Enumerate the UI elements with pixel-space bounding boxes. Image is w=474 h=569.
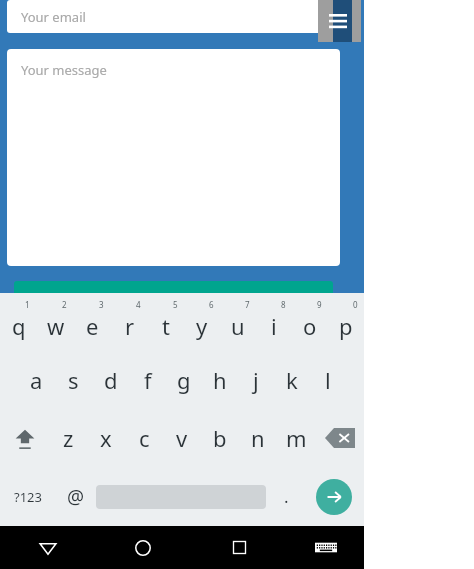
staticText: p	[339, 311, 353, 341]
button[interactable]: Recents	[191, 526, 287, 569]
staticText: m	[286, 423, 307, 453]
staticText: 0	[353, 299, 358, 310]
staticText: 4	[136, 299, 141, 310]
button[interactable]: 7	[220, 293, 256, 350]
staticText: w	[47, 311, 65, 341]
button[interactable]: Back	[0, 526, 95, 569]
button[interactable]: 2	[37, 293, 74, 350]
button[interactable]: 4	[111, 293, 148, 350]
button[interactable]: a	[18, 350, 55, 409]
staticText: 2	[62, 299, 67, 310]
staticText: y	[196, 311, 208, 341]
button[interactable]: l	[310, 350, 346, 409]
staticText: @	[67, 484, 85, 510]
staticText: c	[139, 423, 150, 453]
button[interactable]: Home	[95, 526, 191, 569]
button[interactable]: 0	[328, 293, 364, 350]
staticText: q	[12, 311, 26, 341]
staticText: e	[86, 311, 99, 341]
staticText: r	[125, 311, 135, 341]
button[interactable]: v	[163, 409, 201, 467]
button[interactable]: Your message	[7, 49, 340, 266]
button[interactable]: h	[202, 350, 238, 409]
staticText: u	[231, 311, 245, 341]
staticText: Your message	[21, 61, 107, 79]
staticText: Your email	[21, 8, 86, 26]
button[interactable]: c	[125, 409, 163, 467]
button[interactable]: Delete	[315, 409, 364, 467]
button[interactable]: n	[239, 409, 277, 467]
button[interactable]: 9	[292, 293, 328, 350]
staticText: 6	[209, 299, 214, 310]
button[interactable]: k	[274, 350, 310, 409]
staticText: 7	[245, 299, 250, 310]
staticText: .	[284, 485, 289, 508]
staticText: h	[213, 365, 227, 395]
button[interactable]: @	[56, 467, 96, 526]
staticText: ?123	[14, 488, 42, 506]
button[interactable]: .	[266, 467, 306, 526]
button[interactable]: 1	[0, 293, 37, 350]
button[interactable]: f	[129, 350, 166, 409]
button[interactable]: x	[87, 409, 125, 467]
staticText: f	[144, 365, 152, 395]
staticText: t	[162, 311, 170, 341]
button[interactable]	[14, 281, 333, 305]
staticText: i	[271, 311, 277, 341]
button[interactable]: s	[55, 350, 92, 409]
staticText: k	[286, 365, 298, 395]
button[interactable]: z	[49, 409, 87, 467]
button[interactable]: Menu	[318, 0, 361, 42]
button[interactable]: Send	[316, 479, 352, 515]
staticText: 1	[25, 299, 30, 310]
button[interactable]: b	[201, 409, 239, 467]
button[interactable]: d	[92, 350, 129, 409]
button[interactable]: g	[166, 350, 202, 409]
button[interactable]: Keyboard	[287, 526, 364, 569]
staticText: l	[325, 365, 331, 395]
staticText: n	[251, 423, 265, 453]
staticText: 5	[173, 299, 178, 310]
staticText: 8	[281, 299, 286, 310]
staticText: 9	[317, 299, 322, 310]
staticText: b	[213, 423, 227, 453]
staticText: j	[253, 365, 259, 395]
button[interactable]: 3	[74, 293, 111, 350]
button[interactable]: Your email	[7, 0, 340, 33]
staticText: o	[303, 311, 317, 341]
staticText: z	[63, 423, 74, 453]
staticText: 3	[99, 299, 104, 310]
staticText: v	[176, 423, 188, 453]
button[interactable]: j	[238, 350, 274, 409]
button[interactable]: Shift	[0, 409, 49, 467]
button[interactable]: 5	[148, 293, 184, 350]
button[interactable]: 8	[256, 293, 292, 350]
staticText: x	[100, 423, 112, 453]
button[interactable]: ?123	[0, 467, 56, 526]
staticText: s	[68, 365, 79, 395]
staticText: d	[104, 365, 118, 395]
staticText: g	[177, 365, 191, 395]
staticText: a	[30, 365, 43, 395]
button[interactable]: 6	[184, 293, 220, 350]
button[interactable]: m	[277, 409, 315, 467]
